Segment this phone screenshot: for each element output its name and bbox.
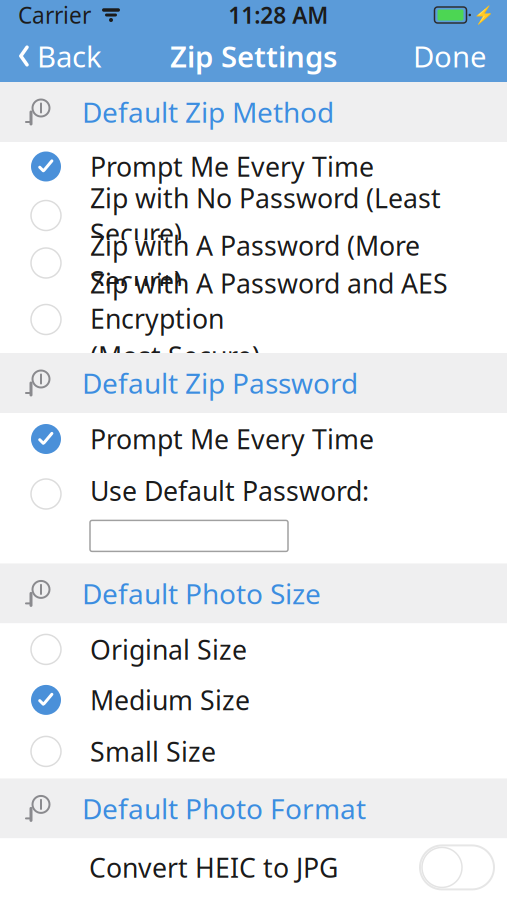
staticText: Prompt Me Every Time	[90, 149, 374, 184]
staticText: Zip Settings	[170, 36, 337, 75]
button[interactable]: Zip with No Password (Least Secure)	[0, 191, 507, 240]
staticText: (Most Secure)	[90, 338, 260, 374]
staticText: Zip with A Password and AES Encryption	[90, 265, 448, 336]
staticText: Small Size	[90, 734, 216, 769]
button[interactable]: Prompt Me Every Time	[0, 413, 507, 465]
staticText: Default Zip Password	[82, 364, 358, 402]
button[interactable]: Convert HEIC to JPG	[0, 838, 507, 896]
button[interactable]: Zip with A Password and AES Encryption	[0, 286, 507, 353]
staticText: Default Photo Size	[82, 575, 321, 612]
button[interactable]: Back	[0, 28, 102, 83]
staticText: Default Zip Method	[82, 93, 334, 131]
button[interactable]: Zip with A Password (More Secure)	[0, 240, 507, 286]
staticText: Zip with A Password (More Secure)	[90, 228, 420, 298]
button[interactable]: Use Default Password:	[0, 465, 507, 563]
staticText: Convert HEIC to JPG	[89, 850, 338, 885]
staticText: Medium Size	[90, 682, 250, 718]
staticText: Done	[413, 36, 487, 75]
staticText: 11:28 AM	[228, 0, 328, 30]
button[interactable]: Done	[413, 28, 507, 83]
button[interactable]: Original Size	[0, 623, 507, 675]
button[interactable]: Prompt Me Every Time	[0, 142, 507, 191]
staticText: ⚡	[473, 5, 495, 25]
staticText: Zip with No Password (Least Secure)	[90, 180, 441, 251]
staticText: Prompt Me Every Time	[90, 421, 374, 457]
button[interactable]: Small Size	[0, 724, 507, 778]
staticText: Back	[37, 36, 102, 75]
staticText: Default Photo Format	[82, 790, 366, 827]
staticText: Original Size	[90, 632, 247, 667]
button[interactable]: Medium Size	[0, 675, 507, 724]
staticText: Carrier	[18, 0, 91, 30]
staticText: Use Default Password:	[90, 473, 369, 508]
